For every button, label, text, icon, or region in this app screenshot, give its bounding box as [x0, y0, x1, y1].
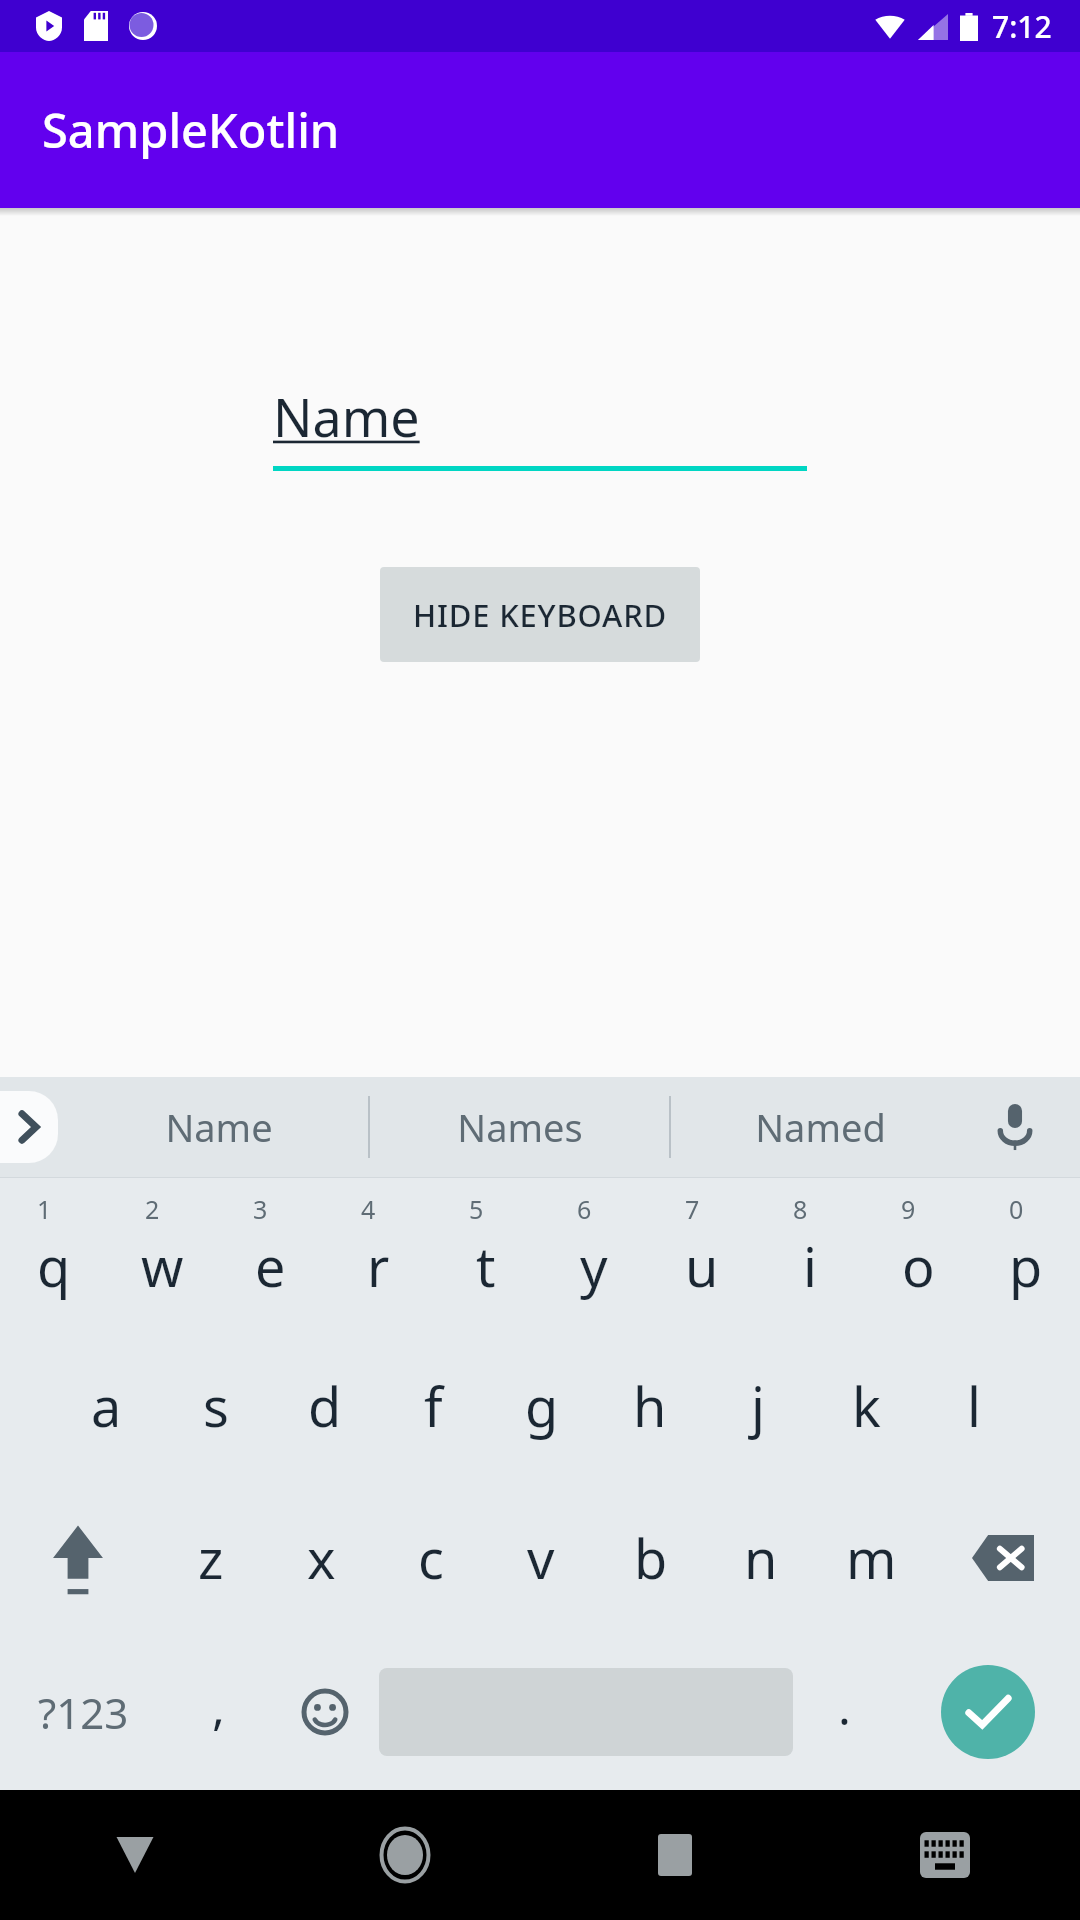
staticText: ,	[212, 1674, 225, 1739]
button[interactable]: Voice input	[970, 1077, 1060, 1177]
button[interactable]: 2	[108, 1178, 216, 1330]
button[interactable]: .	[793, 1634, 896, 1790]
button[interactable]: b	[596, 1482, 706, 1634]
button[interactable]: c	[376, 1482, 486, 1634]
button[interactable]: l	[920, 1330, 1028, 1482]
button[interactable]: 3	[216, 1178, 324, 1330]
staticText: x	[307, 1521, 336, 1595]
staticText: v	[527, 1521, 555, 1595]
staticText: w	[141, 1229, 184, 1303]
button[interactable]: Done	[941, 1665, 1035, 1759]
button[interactable]: j	[704, 1330, 812, 1482]
staticText: i	[803, 1229, 817, 1303]
staticText: y	[580, 1229, 608, 1303]
staticText: 7	[685, 1192, 700, 1226]
button[interactable]: s	[161, 1330, 270, 1482]
staticText: o	[902, 1229, 935, 1303]
staticText: l	[967, 1369, 981, 1443]
button[interactable]: Expand suggestions	[0, 1091, 58, 1163]
staticText: s	[203, 1369, 229, 1443]
button[interactable]: n	[706, 1482, 816, 1634]
button[interactable]: Emoji	[270, 1634, 379, 1790]
staticText: SampleKotlin	[42, 98, 340, 162]
staticText: 5	[469, 1192, 484, 1226]
staticText: k	[852, 1369, 881, 1443]
staticText: 3	[253, 1192, 268, 1226]
button[interactable]: m	[816, 1482, 926, 1634]
button[interactable]: ?123	[0, 1634, 167, 1790]
button[interactable]: d	[270, 1330, 379, 1482]
button[interactable]: Backspace	[926, 1482, 1080, 1634]
staticText: 6	[577, 1192, 592, 1226]
staticText: m	[846, 1521, 897, 1595]
button[interactable]: h	[596, 1330, 704, 1482]
button[interactable]: Back	[0, 1790, 270, 1920]
button[interactable]: Names	[370, 1077, 669, 1177]
staticText: p	[1009, 1229, 1043, 1303]
staticText: 4	[361, 1192, 376, 1226]
button[interactable]: Name	[70, 1077, 368, 1177]
button[interactable]: Named	[671, 1077, 970, 1177]
staticText: 0	[1009, 1192, 1024, 1226]
staticText: Name	[165, 1101, 273, 1153]
staticText: e	[255, 1229, 286, 1303]
staticText: .	[838, 1674, 851, 1739]
staticText: h	[633, 1369, 667, 1443]
staticText: Names	[457, 1101, 583, 1153]
button[interactable]: Shift	[0, 1482, 155, 1634]
button[interactable]: k	[812, 1330, 920, 1482]
button[interactable]: a	[52, 1330, 161, 1482]
staticText: Name	[273, 381, 420, 452]
staticText: q	[37, 1229, 71, 1303]
button[interactable]: HIDE KEYBOARD	[380, 567, 700, 662]
button[interactable]: f	[379, 1330, 488, 1482]
staticText: 8	[793, 1192, 808, 1226]
staticText: n	[744, 1521, 778, 1595]
staticText: 7:12	[992, 6, 1052, 47]
button[interactable]: 9	[864, 1178, 972, 1330]
button[interactable]: ,	[167, 1634, 270, 1790]
staticText: b	[634, 1521, 668, 1595]
staticText: r	[367, 1229, 390, 1303]
button[interactable]: z	[155, 1482, 266, 1634]
button[interactable]: 5	[432, 1178, 540, 1330]
button[interactable]: v	[486, 1482, 596, 1634]
staticText: 1	[37, 1192, 52, 1226]
button[interactable]: 7	[648, 1178, 756, 1330]
button[interactable]: 1	[0, 1178, 108, 1330]
staticText: d	[308, 1369, 342, 1443]
staticText: t	[476, 1229, 496, 1303]
staticText: 9	[901, 1192, 916, 1226]
staticText: 2	[145, 1192, 160, 1226]
staticText: HIDE KEYBOARD	[413, 594, 668, 636]
staticText: a	[91, 1369, 122, 1443]
staticText: g	[525, 1369, 559, 1443]
button[interactable]: g	[488, 1330, 596, 1482]
staticText: Named	[755, 1101, 886, 1153]
staticText: ?123	[38, 1684, 129, 1741]
button[interactable]: Switch keyboard	[810, 1790, 1080, 1920]
staticText: j	[751, 1369, 765, 1443]
button[interactable]: 6	[540, 1178, 648, 1330]
button[interactable]: 4	[324, 1178, 432, 1330]
button[interactable]: 8	[756, 1178, 864, 1330]
staticText: u	[685, 1229, 719, 1303]
button[interactable]: Recents	[540, 1790, 810, 1920]
staticText: c	[418, 1521, 444, 1595]
button[interactable]: x	[266, 1482, 376, 1634]
button[interactable]: 0	[972, 1178, 1080, 1330]
staticText: f	[424, 1369, 443, 1443]
staticText: z	[198, 1521, 224, 1595]
button[interactable]: Home	[270, 1790, 540, 1920]
